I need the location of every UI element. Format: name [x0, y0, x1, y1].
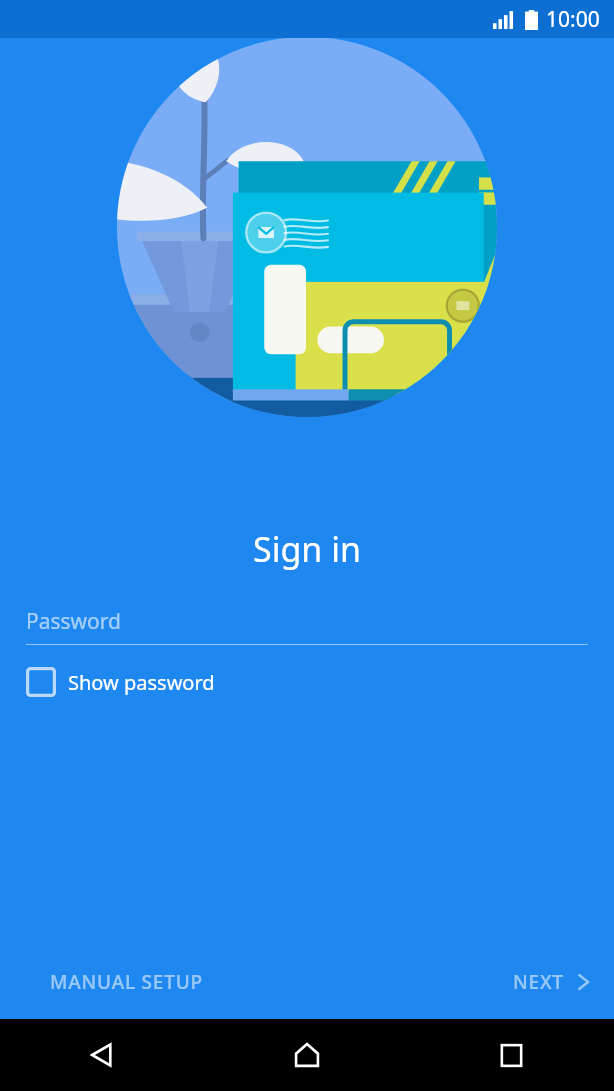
- button[interactable]: NEXT: [503, 957, 602, 1007]
- staticText: Sign in: [253, 526, 361, 572]
- staticText: Show password: [68, 669, 215, 696]
- button[interactable]: Password: [26, 598, 588, 644]
- staticText: Password: [26, 607, 121, 636]
- button[interactable]: Home: [204, 1019, 409, 1091]
- staticText: MANUAL SETUP: [50, 969, 203, 995]
- button[interactable]: Recent apps: [409, 1019, 614, 1091]
- staticText: 10:00: [546, 5, 600, 34]
- staticText: NEXT: [513, 969, 564, 995]
- button[interactable]: Back: [0, 1019, 204, 1091]
- button[interactable]: MANUAL SETUP: [40, 957, 213, 1007]
- button[interactable]: Show password: [26, 663, 588, 701]
